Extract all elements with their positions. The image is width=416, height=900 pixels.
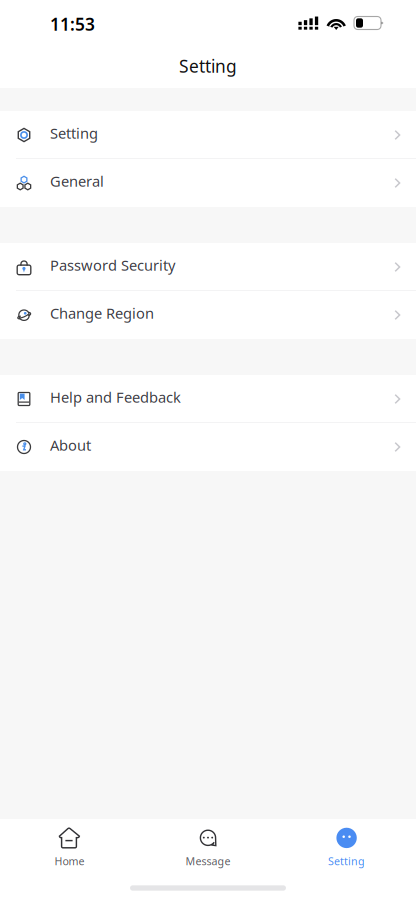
button[interactable]: Home [0,822,139,873]
button[interactable]: Setting [277,822,416,873]
staticText: Setting [179,54,237,77]
staticText: General [50,171,104,191]
staticText: Change Region [50,303,154,323]
staticText: Setting [328,854,365,868]
button[interactable]: Setting [0,111,416,159]
staticText: Home [54,854,84,868]
staticText: Message [185,854,230,868]
button[interactable]: Change Region [0,291,416,339]
button[interactable]: Password Security [0,243,416,291]
button[interactable]: General [0,159,416,207]
staticText: Password Security [50,255,175,275]
button[interactable]: Help and Feedback [0,375,416,423]
button[interactable]: About [0,423,416,471]
button[interactable]: Message [139,822,277,873]
staticText: About [50,435,91,455]
staticText: 11:53 [50,12,95,35]
staticText: Setting [50,123,98,143]
staticText: Help and Feedback [50,387,181,407]
